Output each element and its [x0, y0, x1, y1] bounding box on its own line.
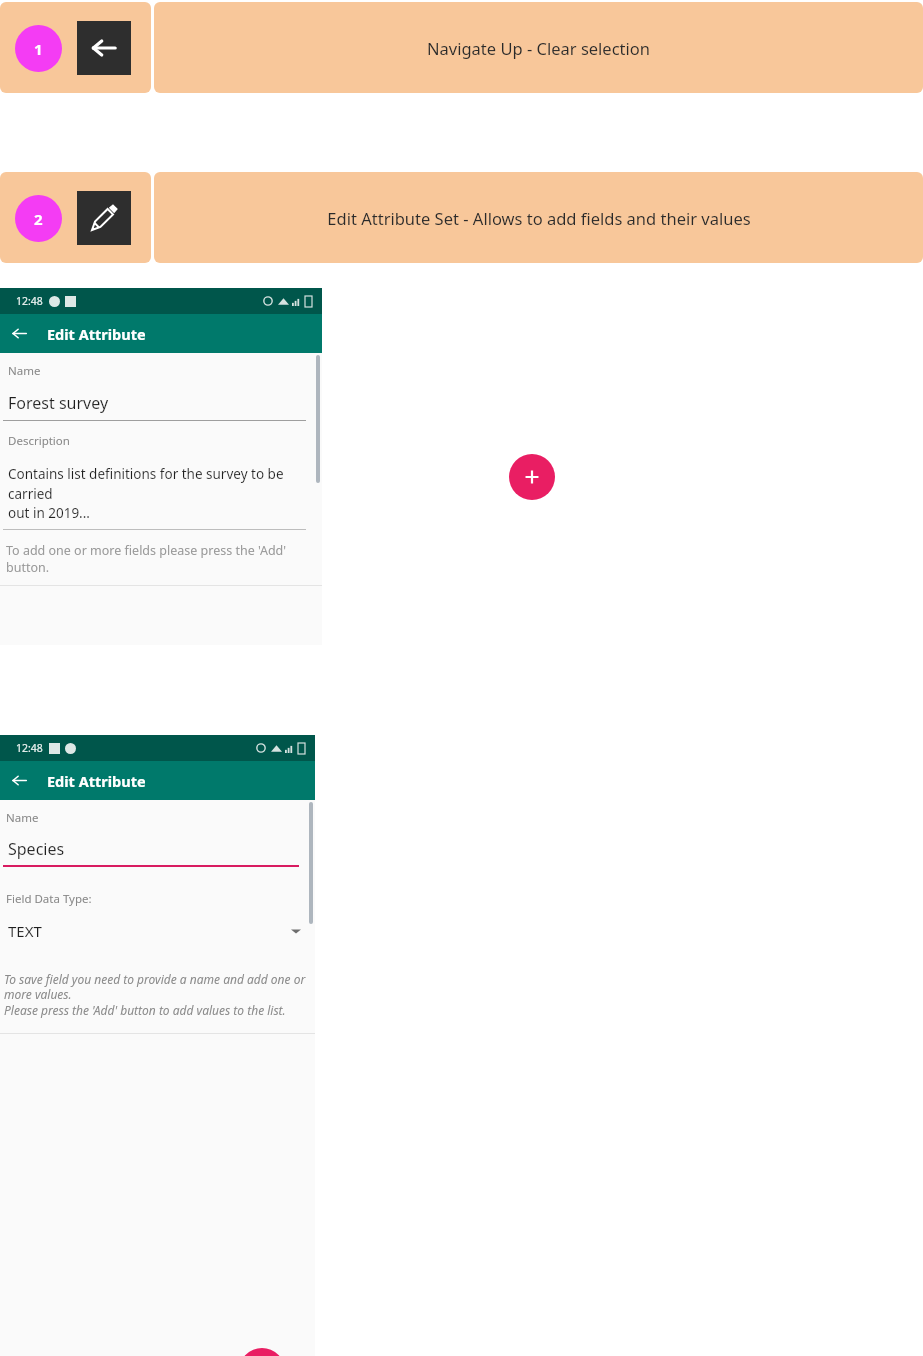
staticText: Name: [6, 810, 39, 826]
staticText: Navigate Up - Clear selection: [427, 37, 650, 59]
staticText: Edit Attribute Set - Allows to add field…: [327, 207, 751, 229]
staticText: Edit Attribute: [47, 771, 146, 791]
staticText: Contains list definitions for the survey…: [8, 465, 302, 522]
staticText: To save field you need to provide a name…: [4, 971, 306, 1019]
staticText: To add one or more fields please press t…: [6, 542, 316, 575]
button[interactable]: Add: [239, 1348, 285, 1356]
button[interactable]: Edit: [77, 191, 131, 245]
button[interactable]: TEXT: [8, 921, 301, 941]
staticText: TEXT: [8, 921, 42, 941]
staticText: Species: [8, 838, 65, 860]
staticText: Forest survey: [8, 392, 109, 414]
button[interactable]: Navigate Up - Clear selection: [154, 2, 923, 93]
button[interactable]: Back: [0, 314, 39, 353]
staticText: 1: [34, 39, 43, 59]
staticText: 2: [34, 209, 43, 229]
staticText: 12:48: [16, 294, 43, 308]
staticText: 12:48: [16, 741, 43, 755]
button[interactable]: 1: [0, 2, 151, 93]
button[interactable]: 2: [0, 172, 151, 263]
button[interactable]: Back: [0, 761, 39, 800]
staticText: Edit Attribute: [47, 324, 146, 344]
staticText: Description: [8, 433, 70, 449]
button[interactable]: Navigate up: [77, 21, 131, 75]
staticText: Field Data Type:: [6, 891, 92, 907]
staticText: Name: [8, 363, 41, 379]
button[interactable]: Add: [509, 454, 555, 500]
button[interactable]: Edit Attribute Set - Allows to add field…: [154, 172, 923, 263]
